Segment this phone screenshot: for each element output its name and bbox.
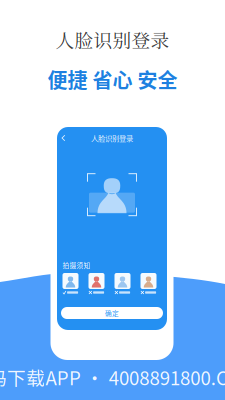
staticText: 扫码下载APP · 4008891800.COM (0, 363, 225, 390)
staticText: 人脸识别登录 (91, 133, 133, 143)
button[interactable]: 确定 (61, 307, 163, 319)
staticText: 确定 (105, 308, 119, 318)
staticText: 拍摄须知 (62, 260, 90, 270)
staticText: 人脸识别登录 (55, 26, 169, 53)
button[interactable]: Back (57, 130, 70, 146)
staticText: 便捷 省心 安全 (47, 65, 177, 94)
